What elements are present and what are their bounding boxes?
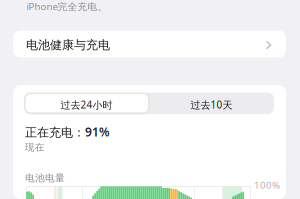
- button[interactable]: 过去10天: [149, 92, 274, 114]
- staticText: iPhone完全充电。: [27, 0, 108, 13]
- button[interactable]: 过去24小时: [24, 92, 149, 114]
- staticText: 过去24小时: [60, 98, 112, 111]
- staticText: 现在: [25, 141, 45, 153]
- staticText: 过去10天: [190, 98, 232, 111]
- staticText: 正在充电：91%: [25, 124, 110, 140]
- staticText: 电池健康与充电: [26, 37, 110, 53]
- staticText: 电池电量: [25, 172, 65, 184]
- button[interactable]: 电池健康与充电: [13, 30, 286, 57]
- staticText: 100%: [254, 178, 280, 191]
